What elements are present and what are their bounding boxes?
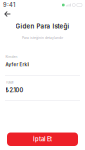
button[interactable]: İptal Et	[7, 132, 78, 146]
staticText: Kimden	[5, 55, 17, 59]
staticText: 9:41	[3, 2, 15, 8]
staticText: Ayfer Erkli	[5, 62, 29, 67]
staticText: ₺2.100	[5, 87, 23, 94]
staticText: Tutar	[5, 80, 13, 84]
staticText: Para isteğinin detaylarıdır	[22, 36, 63, 40]
staticText: Giden Para İsteği	[15, 23, 69, 30]
button[interactable]: Back	[2, 10, 12, 18]
staticText: İptal Et	[33, 136, 52, 143]
